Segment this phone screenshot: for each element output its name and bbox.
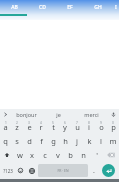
- button[interactable]: b: [64, 148, 77, 162]
- staticText: i: [88, 122, 90, 132]
- staticText: v: [56, 150, 60, 160]
- staticText: 6: [64, 121, 66, 125]
- button[interactable]: Enter: [98, 164, 119, 177]
- staticText: CD: [39, 4, 46, 11]
- button[interactable]: Shift: [0, 148, 14, 162]
- button[interactable]: ?123: [0, 164, 15, 177]
- button[interactable]: Space: [38, 164, 88, 177]
- staticText: b: [68, 150, 73, 160]
- staticText: ?123: [3, 168, 13, 174]
- staticText: g: [51, 136, 56, 146]
- button[interactable]: GH: [84, 0, 112, 14]
- button[interactable]: 9: [95, 120, 107, 134]
- button[interactable]: bonjour: [10, 109, 42, 120]
- button[interactable]: 5: [47, 120, 59, 134]
- button[interactable]: g: [47, 134, 59, 148]
- staticText: 4: [40, 121, 42, 125]
- staticText: EF: [67, 4, 73, 11]
- staticText: AB: [11, 4, 18, 11]
- button[interactable]: x: [26, 148, 38, 162]
- staticText: GH: [94, 4, 102, 11]
- button[interactable]: 4: [35, 120, 47, 134]
- staticText: 2: [16, 121, 18, 125]
- staticText: x: [30, 150, 34, 160]
- staticText: .: [93, 166, 95, 176]
- staticText: h: [63, 136, 68, 146]
- staticText: e: [27, 122, 32, 132]
- button[interactable]: k: [83, 134, 95, 148]
- staticText: q: [3, 136, 8, 146]
- button[interactable]: Emoji: [15, 164, 26, 177]
- staticText: p: [111, 122, 116, 132]
- staticText: k: [87, 136, 92, 146]
- button[interactable]: Backspace: [103, 148, 119, 162]
- button[interactable]: 3: [23, 120, 35, 134]
- staticText: z: [15, 122, 19, 132]
- button[interactable]: d: [23, 134, 35, 148]
- staticText: l: [100, 136, 102, 146]
- button[interactable]: j: [71, 134, 83, 148]
- staticText: 9: [100, 121, 102, 125]
- button[interactable]: f: [35, 134, 47, 148]
- button[interactable]: s: [11, 134, 23, 148]
- button[interactable]: CD: [28, 0, 56, 14]
- staticText: 5: [52, 121, 54, 125]
- button[interactable]: Voice input: [108, 109, 119, 120]
- button[interactable]: AB: [0, 0, 28, 14]
- button[interactable]: 2: [11, 120, 23, 134]
- staticText: m: [109, 136, 117, 146]
- staticText: u: [75, 122, 80, 132]
- staticText: t: [52, 122, 55, 132]
- staticText: 1: [5, 121, 7, 125]
- staticText: a: [3, 122, 8, 132]
- button[interactable]: merci: [75, 109, 108, 120]
- button[interactable]: ': [90, 148, 103, 162]
- staticText: bonjour: [16, 111, 37, 118]
- button[interactable]: w: [14, 148, 26, 162]
- button[interactable]: n: [77, 148, 90, 162]
- staticText: FR · EN: [57, 168, 69, 173]
- staticText: je: [56, 111, 61, 118]
- staticText: 3: [28, 121, 30, 125]
- button[interactable]: 7: [71, 120, 83, 134]
- button[interactable]: l: [95, 134, 107, 148]
- staticText: s: [15, 136, 19, 146]
- staticText: d: [27, 136, 32, 146]
- button[interactable]: I: [112, 0, 119, 14]
- staticText: I: [115, 4, 117, 11]
- staticText: y: [63, 122, 67, 132]
- button[interactable]: .: [89, 164, 98, 177]
- staticText: ': [96, 150, 98, 160]
- staticText: c: [43, 150, 47, 160]
- staticText: w: [17, 150, 23, 160]
- staticText: f: [40, 136, 43, 146]
- button[interactable]: v: [51, 148, 64, 162]
- staticText: 0: [112, 121, 114, 125]
- staticText: merci: [84, 111, 99, 118]
- staticText: o: [99, 122, 104, 132]
- button[interactable]: h: [59, 134, 71, 148]
- button[interactable]: c: [38, 148, 51, 162]
- button[interactable]: 1: [0, 120, 11, 134]
- staticText: n: [81, 150, 86, 160]
- button[interactable]: 8: [83, 120, 95, 134]
- staticText: r: [39, 122, 43, 132]
- button[interactable]: 0: [107, 120, 119, 134]
- button[interactable]: Change language: [26, 164, 37, 177]
- button[interactable]: EF: [56, 0, 84, 14]
- button[interactable]: 6: [59, 120, 71, 134]
- button[interactable]: m: [107, 134, 119, 148]
- button[interactable]: More suggestions: [0, 109, 10, 120]
- staticText: 7: [76, 121, 78, 125]
- button[interactable]: je: [42, 109, 75, 120]
- staticText: 8: [88, 121, 90, 125]
- button[interactable]: q: [0, 134, 11, 148]
- staticText: j: [76, 136, 78, 146]
